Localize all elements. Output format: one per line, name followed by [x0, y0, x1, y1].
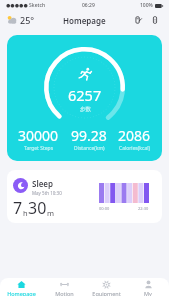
staticText: 6257 — [68, 85, 102, 105]
staticText: Sleep — [32, 178, 54, 189]
staticText: Calories(kcal) — [119, 145, 151, 152]
button[interactable]: Device — [148, 13, 162, 27]
staticText: ●●●●● Sketch — [6, 2, 46, 9]
staticText: Target Steps — [24, 145, 54, 152]
staticText: May 5th 10:30 — [32, 190, 62, 196]
staticText: 22:30 — [138, 206, 149, 211]
staticText: 30 — [28, 197, 47, 219]
staticText: Homepage — [63, 15, 106, 26]
staticText: Equipment — [92, 290, 121, 296]
staticText: h — [23, 208, 28, 218]
staticText: 2086 — [118, 126, 151, 145]
staticText: 06:29 — [82, 2, 95, 9]
button[interactable]: My — [127, 278, 169, 300]
staticText: 100% — [140, 2, 153, 9]
staticText: Homepage — [7, 290, 36, 296]
staticText: 25° — [20, 14, 35, 26]
button[interactable]: Equipment — [85, 278, 127, 300]
staticText: 99.28 — [71, 126, 107, 145]
staticText: 00:00 — [99, 206, 110, 211]
button[interactable]: Homepage — [0, 278, 43, 300]
button[interactable]: Sleep — [7, 170, 162, 223]
staticText: 30000 — [18, 126, 59, 145]
staticText: Motion — [55, 290, 74, 296]
button[interactable]: Scan — [131, 13, 145, 27]
staticText: m — [47, 208, 55, 218]
button[interactable]: 6257 — [7, 35, 162, 161]
staticText: 步数 — [80, 106, 91, 113]
button[interactable]: Motion — [43, 278, 85, 300]
button[interactable]: 25° — [5, 12, 36, 28]
staticText: Distance(km) — [74, 145, 105, 152]
staticText: 7 — [13, 197, 23, 219]
staticText: My — [144, 290, 152, 296]
